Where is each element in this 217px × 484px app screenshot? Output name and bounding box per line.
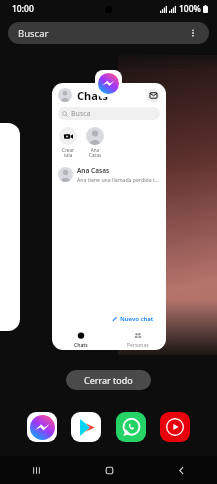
button[interactable]: More options: [187, 27, 199, 39]
staticText: Personas: [127, 342, 149, 349]
button[interactable]: WhatsApp: [116, 412, 146, 442]
staticText: Ana tiene una llamada perdida tuya. · 9 …: [77, 176, 160, 183]
button[interactable]: Personas: [109, 330, 166, 350]
button[interactable]: Back: [145, 456, 217, 484]
button[interactable]: Nuevo chat: [106, 312, 160, 326]
button[interactable]: New message: [147, 89, 160, 102]
button[interactable]: Ana Casas: [52, 163, 166, 185]
button[interactable]: [86, 127, 104, 145]
button[interactable]: Busca: [58, 107, 160, 120]
staticText: Nuevo chat: [120, 315, 154, 323]
button[interactable]: Messenger: [27, 412, 57, 442]
staticText: Busca: [71, 109, 91, 119]
staticText: Chats: [77, 88, 109, 103]
button[interactable]: Recent apps: [0, 456, 73, 484]
staticText: Crear sala: [58, 147, 78, 158]
button[interactable]: Chats: [52, 83, 166, 350]
button[interactable]: [0, 123, 20, 331]
staticText: Ana Casas: [85, 147, 105, 158]
button[interactable]: Crear sala: [59, 127, 77, 145]
staticText: 100%: [179, 3, 201, 15]
button[interactable]: YouTube: [160, 412, 190, 442]
button[interactable]: Chats: [52, 330, 109, 350]
button[interactable]: Buscar: [8, 22, 209, 44]
staticText: Ana Casas: [77, 166, 110, 175]
button[interactable]: Google Play Store: [71, 412, 101, 442]
staticText: Chats: [74, 342, 88, 349]
staticText: Cerrar todo: [84, 374, 133, 386]
button[interactable]: Messenger: [95, 70, 122, 97]
button[interactable]: Cerrar todo: [66, 370, 151, 390]
button[interactable]: Home: [73, 456, 145, 484]
staticText: 10:00: [12, 3, 34, 15]
staticText: Buscar: [18, 27, 187, 40]
